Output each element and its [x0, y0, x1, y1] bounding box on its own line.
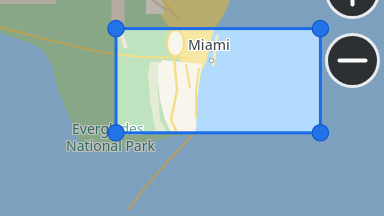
button[interactable] [325, 33, 380, 88]
staticText: Everglades [73, 118, 145, 137]
staticText: Everglades [72, 120, 144, 139]
staticText: Miami [188, 36, 230, 55]
staticText: National Park [67, 137, 156, 156]
staticText: Everglades [72, 118, 144, 137]
staticText: Miami [188, 35, 230, 54]
staticText: Everglades [71, 120, 143, 139]
staticText: National Park [67, 135, 156, 154]
staticText: Miami [189, 34, 231, 53]
staticText: Everglades [71, 118, 143, 137]
staticText: Miami [187, 36, 229, 55]
staticText: National Park [65, 137, 154, 156]
staticText: Miami [188, 34, 230, 53]
staticText: Miami [187, 34, 229, 53]
staticText: Everglades [73, 120, 145, 139]
staticText: Miami [189, 35, 231, 54]
staticText: Miami [187, 35, 229, 54]
staticText: Everglades [71, 119, 143, 138]
button[interactable] [325, 0, 380, 19]
staticText: National Park [66, 137, 155, 156]
staticText: National Park [66, 135, 155, 154]
staticText: National Park [65, 135, 154, 154]
staticText: Everglades [72, 119, 144, 138]
staticText: National Park [66, 136, 155, 155]
staticText: National Park [65, 136, 154, 155]
staticText: National Park [67, 136, 156, 155]
staticText: Miami [189, 36, 231, 55]
staticText: Everglades [73, 119, 145, 138]
